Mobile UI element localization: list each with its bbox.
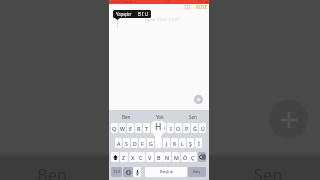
button[interactable]: Gift xyxy=(185,4,190,9)
staticText: X xyxy=(131,154,135,161)
button[interactable]: G xyxy=(147,138,154,148)
staticText: %82 xyxy=(198,0,205,4)
button[interactable]: P xyxy=(183,123,190,133)
button[interactable]: Y xyxy=(151,123,158,133)
button[interactable]: Boşluk xyxy=(145,167,187,177)
button[interactable]: M xyxy=(172,152,180,162)
staticText: J xyxy=(166,140,168,147)
button[interactable]: A xyxy=(115,138,122,148)
staticText: Ü xyxy=(201,125,205,132)
button[interactable]: Ü xyxy=(199,123,206,133)
button[interactable]: R xyxy=(135,123,142,133)
button[interactable]: İ xyxy=(195,138,202,148)
button[interactable]: H xyxy=(155,138,162,148)
staticText: Y xyxy=(153,125,157,132)
button[interactable]: I xyxy=(167,123,174,133)
button[interactable]: 123 xyxy=(111,167,122,177)
button[interactable]: D xyxy=(131,138,138,148)
staticText: O xyxy=(176,125,181,132)
button[interactable]: Emoji xyxy=(123,167,133,177)
staticText: Ö xyxy=(183,154,188,161)
staticText: B xyxy=(157,154,161,161)
staticText: T xyxy=(145,125,148,132)
staticText: G xyxy=(149,140,153,147)
staticText: L xyxy=(181,140,184,147)
staticText: E xyxy=(129,125,132,132)
staticText: M xyxy=(174,154,179,161)
button[interactable]: Add xyxy=(269,100,308,139)
staticText: U xyxy=(161,125,165,132)
button[interactable]: B xyxy=(155,152,163,162)
staticText: Q xyxy=(112,125,117,132)
staticText: H xyxy=(155,121,162,133)
button[interactable]: Ö xyxy=(181,152,189,162)
staticText: Z xyxy=(122,154,126,161)
button[interactable]: J xyxy=(163,138,170,148)
button[interactable]: B I U xyxy=(134,10,151,18)
staticText: Türk Telekom xyxy=(113,0,134,4)
staticText: K xyxy=(173,140,177,147)
staticText: S xyxy=(125,140,128,147)
staticText: A xyxy=(117,140,121,147)
button[interactable]: Sen xyxy=(176,110,209,123)
button[interactable]: Shift xyxy=(111,152,119,162)
button[interactable]: U xyxy=(159,123,166,133)
button[interactable]: T xyxy=(143,123,150,133)
staticText: D xyxy=(133,140,137,147)
staticText: Ben xyxy=(37,163,68,180)
staticText: İ xyxy=(198,140,200,147)
staticText: Yapıştır xyxy=(116,11,132,17)
staticText: B I U xyxy=(138,11,148,17)
button[interactable]: Geç xyxy=(188,167,206,177)
button[interactable]: Yok xyxy=(143,110,176,123)
button[interactable]: Ç xyxy=(189,152,197,162)
button[interactable]: Add attachment xyxy=(194,95,203,104)
button[interactable]: L xyxy=(179,138,186,148)
staticText: P xyxy=(185,125,189,132)
button[interactable]: Z xyxy=(120,152,128,162)
staticText: F xyxy=(141,140,144,147)
staticText: Yok xyxy=(156,114,164,120)
button[interactable]: Q xyxy=(111,123,118,133)
button[interactable]: O xyxy=(175,123,182,133)
button[interactable]: Backspace xyxy=(198,152,206,162)
button[interactable]: Yapıştır xyxy=(113,10,134,18)
staticText: 123 xyxy=(113,169,121,175)
staticText: 13:06 xyxy=(163,0,171,4)
staticText: Geç xyxy=(193,169,201,175)
staticText: H xyxy=(157,140,161,147)
staticText: Ğ xyxy=(193,125,197,132)
staticText: C xyxy=(139,154,143,161)
staticText: Pazar 22:51 22:51 xyxy=(145,17,180,23)
button[interactable]: Ş xyxy=(187,138,194,148)
staticText: Ş xyxy=(189,140,192,147)
staticText: Sen xyxy=(189,114,197,120)
staticText: KOSE xyxy=(196,4,208,10)
button[interactable]: N xyxy=(163,152,171,162)
button[interactable]: E xyxy=(127,123,134,133)
button[interactable]: Ben xyxy=(109,110,143,123)
staticText: Boşluk xyxy=(160,169,173,175)
staticText: Ben xyxy=(122,114,131,120)
button[interactable]: F xyxy=(139,138,146,148)
button[interactable]: Voice input xyxy=(133,167,141,177)
button[interactable]: V xyxy=(146,152,154,162)
button[interactable]: X xyxy=(129,152,137,162)
staticText: I xyxy=(170,125,172,132)
staticText: V xyxy=(148,154,152,161)
staticText: R xyxy=(137,125,141,132)
staticText: Ç xyxy=(191,154,195,161)
staticText: W xyxy=(120,125,125,132)
button[interactable]: S xyxy=(123,138,130,148)
button[interactable]: C xyxy=(137,152,145,162)
staticText: Sen xyxy=(254,163,283,180)
button[interactable]: W xyxy=(119,123,126,133)
staticText: N xyxy=(165,154,170,161)
button[interactable]: Ğ xyxy=(191,123,198,133)
button[interactable]: K xyxy=(171,138,178,148)
